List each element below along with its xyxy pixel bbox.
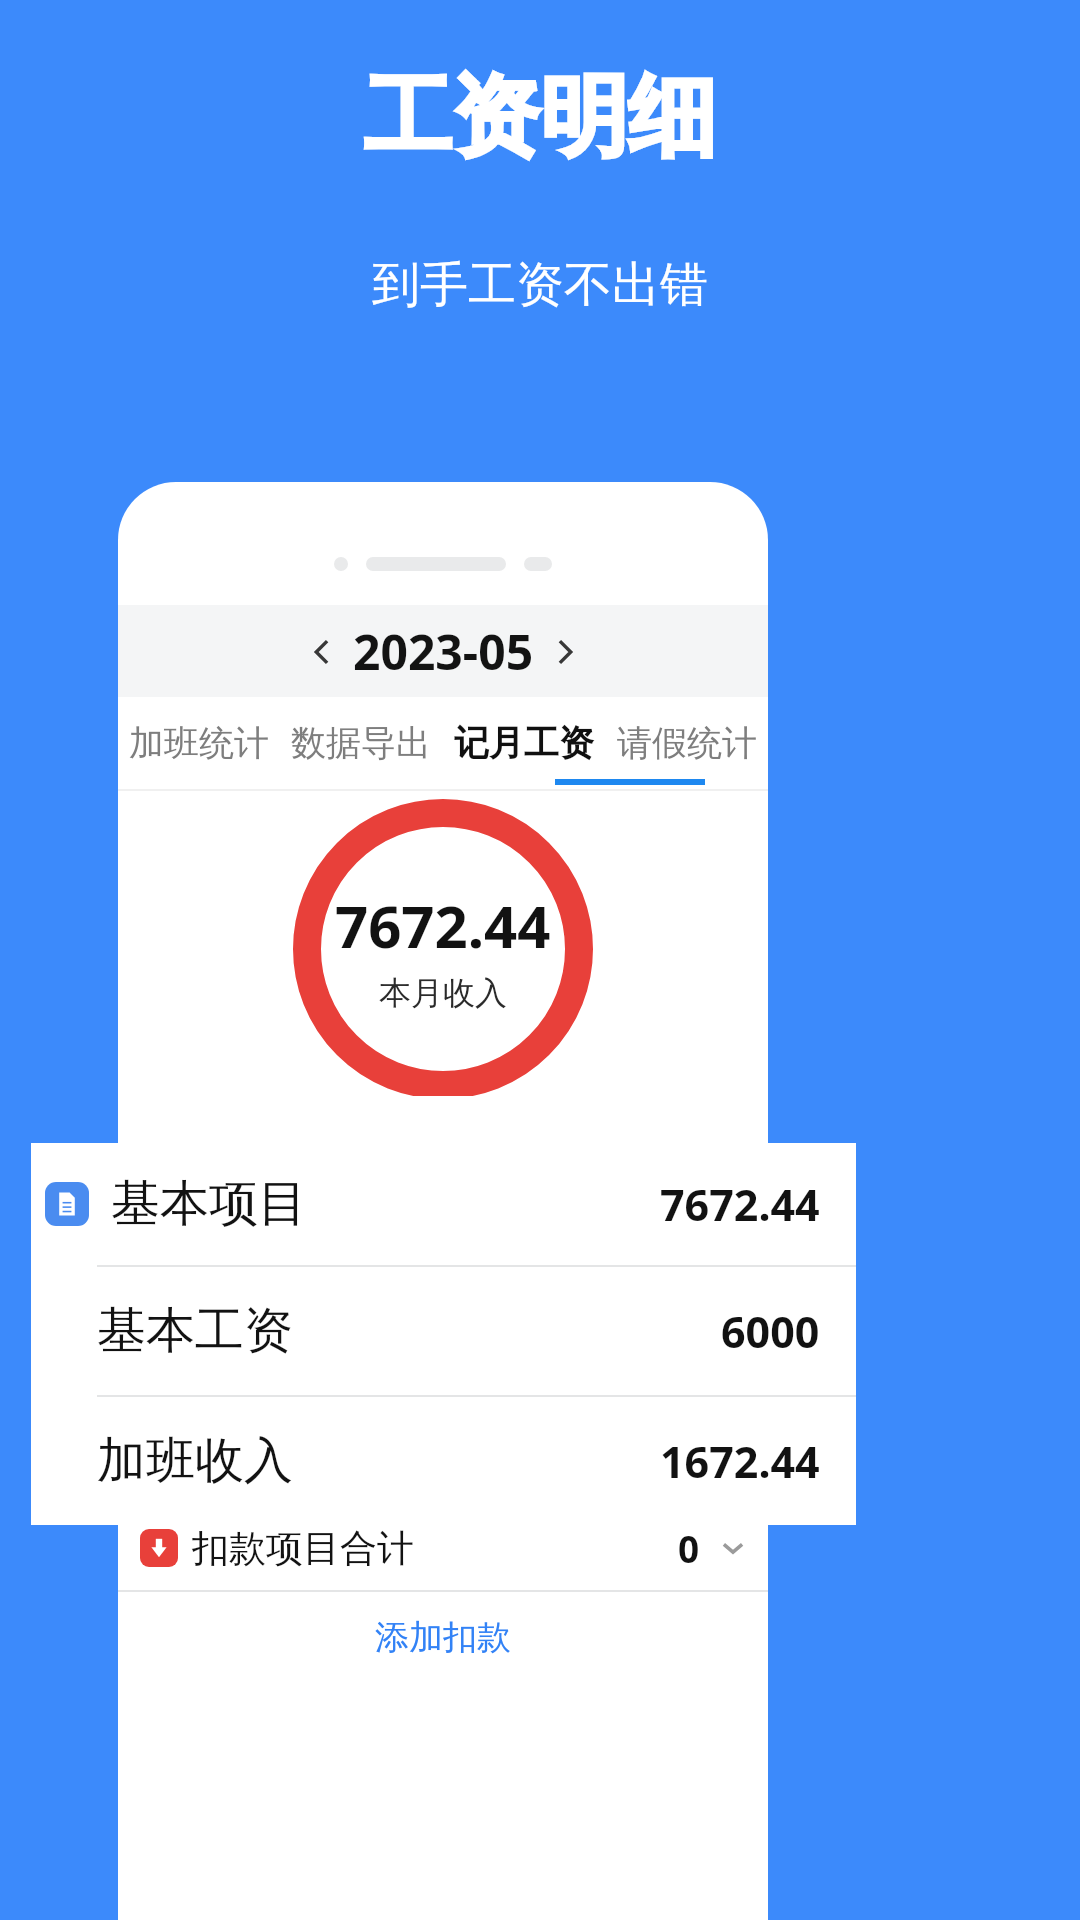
staticText: 7672.44 — [660, 1175, 820, 1234]
button[interactable]: Next month — [542, 629, 588, 675]
button[interactable]: 基本工资 — [97, 1267, 820, 1395]
staticText: 1672.44 — [660, 1432, 820, 1491]
button[interactable]: 加班统计 — [118, 697, 280, 789]
button[interactable]: 添加补贴 — [118, 1414, 768, 1494]
staticText: 到手工资不出错 — [372, 255, 708, 315]
staticText: 6000 — [721, 1302, 820, 1361]
staticText: 0 — [678, 1523, 700, 1573]
button[interactable]: 记月工资 — [442, 697, 605, 789]
staticText: 基本项目 — [111, 1173, 307, 1235]
staticText: 加班统计 — [129, 721, 269, 765]
staticText: 添加扣款 — [375, 1616, 511, 1659]
staticText: 工资明细 — [364, 62, 716, 173]
staticText: 基本工资 — [97, 1300, 293, 1362]
button[interactable]: 加班收入 — [97, 1397, 820, 1525]
button[interactable]: 基本项目 — [45, 1143, 820, 1265]
staticText: 请假统计 — [617, 721, 757, 765]
staticText: 2023-05 — [353, 619, 534, 684]
button[interactable]: 扣款项目合计 — [140, 1506, 746, 1590]
button[interactable]: Previous month — [299, 629, 345, 675]
staticText: 扣款项目合计 — [192, 1525, 414, 1572]
button[interactable]: 请假统计 — [605, 697, 768, 789]
staticText: 加班收入 — [97, 1430, 293, 1492]
button[interactable]: 数据导出 — [280, 697, 442, 789]
staticText: 本月收入 — [379, 973, 507, 1013]
button[interactable]: 添加扣款 — [118, 1592, 768, 1682]
staticText: 7672.44 — [335, 886, 551, 965]
staticText: 数据导出 — [291, 721, 431, 765]
staticText: 记月工资 — [454, 721, 594, 765]
